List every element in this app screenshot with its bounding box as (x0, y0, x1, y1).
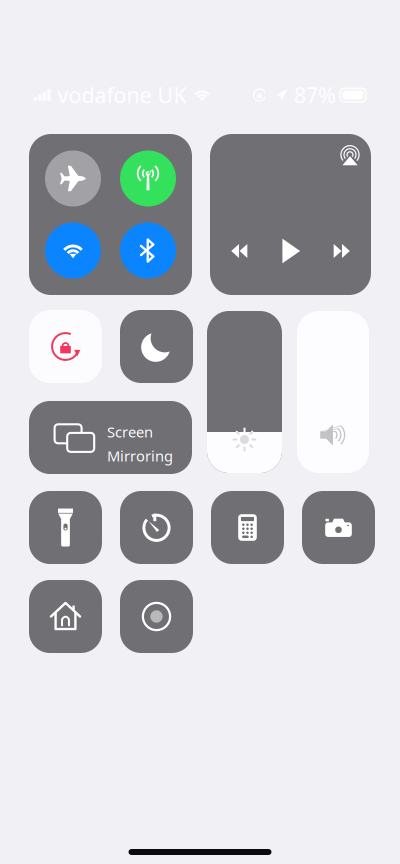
button[interactable]: Screen Mirroring (29, 401, 192, 474)
staticText: vodafone UK (57, 81, 186, 109)
button[interactable]: Fast Forward (320, 231, 364, 271)
staticText: Screen (107, 422, 153, 441)
button[interactable]: Flashlight (29, 491, 102, 564)
button[interactable]: Rewind (216, 231, 260, 271)
button[interactable]: Airplane Mode (45, 150, 101, 206)
button[interactable]: Timer (120, 491, 193, 564)
button[interactable]: Play (268, 231, 312, 271)
button[interactable]: Brightness (207, 311, 282, 473)
button[interactable]: Cellular Data (120, 150, 176, 206)
button[interactable]: Bluetooth (120, 222, 176, 278)
button[interactable]: Volume (297, 311, 369, 473)
button[interactable]: Wi-Fi (45, 222, 101, 278)
button[interactable]: AirPlay (335, 141, 365, 171)
button[interactable]: Calculator (211, 491, 284, 564)
button[interactable]: Home (29, 580, 102, 653)
button[interactable]: Rotation Lock (29, 310, 102, 383)
staticText: 87% (294, 81, 336, 109)
staticText: Mirroring (107, 446, 173, 465)
button[interactable]: Do Not Disturb (120, 310, 193, 383)
button[interactable]: Camera (302, 491, 375, 564)
button[interactable]: Screen Recording (120, 580, 193, 653)
